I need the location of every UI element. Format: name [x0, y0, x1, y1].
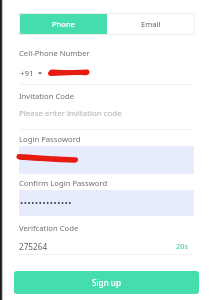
staticText: Login Passoword [19, 134, 81, 144]
button[interactable]: 20s [176, 239, 188, 252]
button[interactable]: Phone [19, 13, 107, 35]
staticText: Phone [52, 19, 75, 29]
staticText: Email [141, 19, 161, 29]
staticText: +91 [20, 68, 34, 79]
button[interactable]: +91 [19, 66, 194, 80]
staticText: Invitation Code [19, 91, 75, 101]
button[interactable]: Sign up [14, 271, 199, 294]
staticText: Confirm Login Password [19, 178, 108, 188]
staticText: 20s [176, 241, 188, 251]
staticText: Cell-Phone Number [19, 48, 90, 58]
staticText: Please enter invitation code [19, 108, 122, 119]
staticText: Verifcation Code [19, 223, 79, 233]
button[interactable]: Email [107, 13, 195, 35]
button[interactable]: Please enter invitation code [19, 108, 194, 120]
button[interactable] [19, 190, 194, 216]
staticText: 275264 [19, 241, 48, 252]
button[interactable] [19, 146, 194, 174]
staticText: Sign up [92, 277, 121, 288]
